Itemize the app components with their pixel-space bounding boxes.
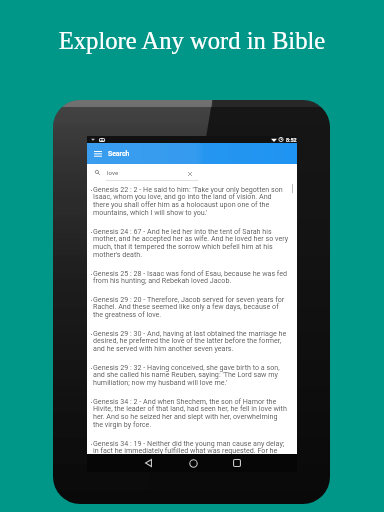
staticText: Search [108, 150, 130, 158]
staticText: Genesis 22 : 2 - He said to him: 'Take y… [93, 185, 289, 217]
button[interactable]: Recent apps [226, 454, 248, 472]
button[interactable]: Back [137, 454, 159, 472]
button[interactable]: Home [182, 454, 204, 472]
staticText: Genesis 29 : 30 - And, having at last ob… [93, 329, 289, 353]
staticText: Explore Any word in Bible [0, 27, 384, 54]
staticText: 8:52 [286, 137, 297, 143]
staticText: love [107, 169, 119, 176]
button[interactable]: Open navigation menu [89, 143, 107, 164]
button[interactable]: Genesis 34 : 2 - And when Shechem, the s… [91, 397, 289, 429]
button[interactable]: Genesis 29 : 20 - Therefore, Jacob serve… [91, 295, 289, 319]
staticText: Genesis 34 : 19 - Neither did the young … [93, 439, 289, 454]
staticText: Genesis 24 : 67 - And he led her into th… [93, 227, 289, 259]
button[interactable]: Genesis 29 : 32 - Having conceived, she … [91, 363, 289, 387]
button[interactable]: Clear search [184, 164, 196, 183]
button[interactable]: Genesis 22 : 2 - He said to him: 'Take y… [91, 185, 289, 217]
button[interactable]: Genesis 25 : 28 - Isaac was fond of Esau… [91, 269, 289, 285]
staticText: Genesis 25 : 28 - Isaac was fond of Esau… [93, 269, 289, 285]
staticText: Genesis 34 : 2 - And when Shechem, the s… [93, 397, 289, 429]
button[interactable]: love [87, 164, 297, 183]
button[interactable]: Genesis 24 : 67 - And he led her into th… [91, 227, 289, 259]
staticText: Genesis 29 : 20 - Therefore, Jacob serve… [93, 295, 289, 319]
button[interactable]: Genesis 29 : 30 - And, having at last ob… [91, 329, 289, 353]
button[interactable]: Genesis 34 : 19 - Neither did the young … [91, 439, 289, 454]
staticText: Genesis 29 : 32 - Having conceived, she … [93, 363, 289, 387]
